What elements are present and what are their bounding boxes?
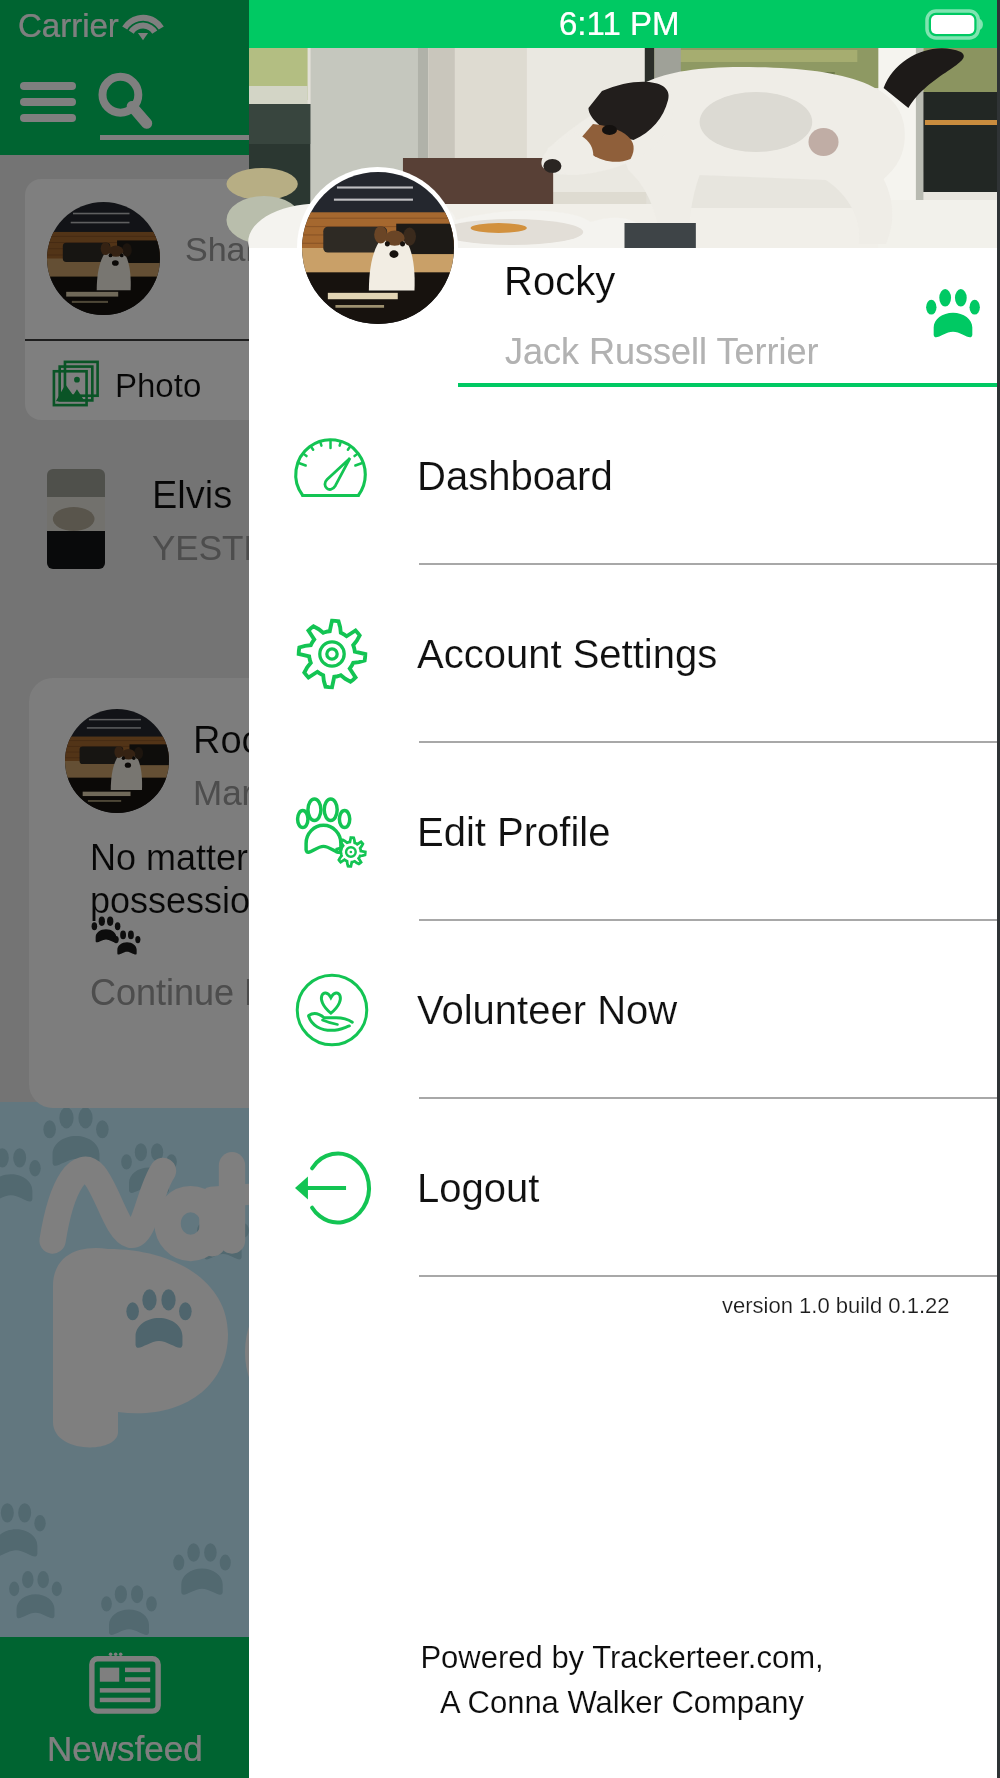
staticText: Carrier [18,7,119,44]
staticText: version 1.0 build 0.1.22 [722,1293,950,1318]
staticText: March 6 [193,773,320,812]
staticText: Elvis [152,474,233,516]
staticText: YESTERDAY [152,528,452,567]
button[interactable]: Open navigation menu [8,70,88,134]
button[interactable]: Search [90,66,162,138]
button[interactable]: Dashboard [249,388,1000,564]
staticText: Account Settings [417,632,718,677]
staticText: Photo [115,367,202,404]
button[interactable]: Pet paw [925,288,981,344]
staticText: Jack Russell Terrier [505,331,819,371]
button[interactable]: Logout [249,1100,1000,1276]
button[interactable]: Volunteer Now [249,922,1000,1098]
staticText: 6:11 PM [559,5,680,42]
staticText: Edit Profile [417,810,611,855]
button[interactable]: Newsfeed [0,1651,250,1768]
staticText: Rocky [193,719,299,761]
staticText: Dashboard [417,454,613,499]
staticText: Volunteer Now [417,988,678,1033]
staticText: Newsfeed [47,1729,203,1768]
button[interactable]: Edit Profile [249,744,1000,920]
staticText: Share something... [185,230,485,268]
staticText: Rocky [504,259,616,304]
button[interactable]: Account Settings [249,566,1000,742]
staticText: Logout [417,1166,540,1211]
staticText: Continue Reading [90,972,479,1012]
staticText: Powered by Trackerteer.com, A Conna Walk… [420,1640,824,1720]
staticText: No matter how little money and how few p… [90,837,479,921]
